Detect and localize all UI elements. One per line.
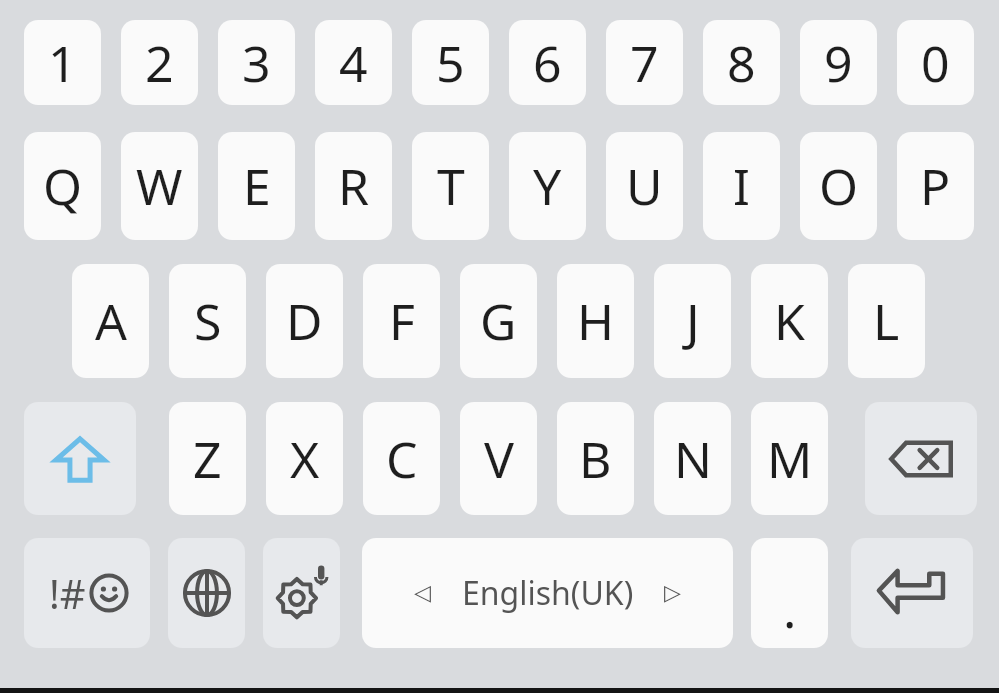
button[interactable]: M [751, 402, 828, 515]
button[interactable]: P [897, 132, 974, 240]
staticText: 6 [533, 29, 562, 97]
button[interactable]: Q [24, 132, 101, 240]
staticText: L [873, 287, 900, 355]
staticText: J [686, 287, 700, 355]
staticText: 9 [824, 29, 853, 97]
staticText: D [286, 287, 323, 355]
button[interactable]: 9 [800, 20, 877, 105]
staticText: 0 [921, 29, 950, 97]
staticText: U [626, 152, 663, 220]
staticText: X [290, 425, 320, 493]
button[interactable]: 1 [24, 20, 101, 105]
button[interactable]: F [363, 264, 440, 378]
staticText: !# [49, 566, 86, 620]
staticText: N [674, 425, 712, 493]
staticText: 4 [339, 29, 368, 97]
staticText: 8 [727, 29, 756, 97]
button[interactable]: 4 [315, 20, 392, 105]
staticText: S [194, 287, 222, 355]
staticText: W [136, 152, 183, 220]
button[interactable]: Backspace [865, 402, 977, 515]
staticText: A [95, 287, 127, 355]
button[interactable]: S [169, 264, 246, 378]
staticText: F [389, 287, 415, 355]
staticText: 2 [145, 29, 174, 97]
button[interactable]: J [654, 264, 731, 378]
button[interactable]: Y [509, 132, 586, 240]
staticText: 3 [242, 29, 271, 97]
staticText: T [437, 152, 465, 220]
staticText: R [338, 152, 370, 220]
staticText: V [484, 425, 514, 493]
button[interactable]: 7 [606, 20, 683, 105]
button[interactable]: D [266, 264, 343, 378]
button[interactable]: C [363, 402, 440, 515]
staticText: Q [43, 152, 83, 220]
staticText: English(UK) [462, 571, 634, 615]
button[interactable]: E [218, 132, 295, 240]
staticText: . [783, 575, 797, 643]
staticText: G [480, 287, 517, 355]
button[interactable]: ◁ [362, 538, 733, 648]
staticText: H [577, 287, 615, 355]
staticText: Y [533, 152, 562, 220]
button[interactable]: L [848, 264, 925, 378]
button[interactable]: . [751, 538, 828, 648]
button[interactable]: V [460, 402, 537, 515]
button[interactable]: O [800, 132, 877, 240]
button[interactable]: K [751, 264, 828, 378]
button[interactable]: N [654, 402, 731, 515]
staticText: Z [193, 425, 222, 493]
staticText: ▷ [664, 580, 681, 606]
button[interactable]: H [557, 264, 634, 378]
staticText: ◁ [414, 580, 431, 606]
button[interactable]: Z [169, 402, 246, 515]
staticText: B [579, 425, 612, 493]
button[interactable]: Change language [168, 538, 245, 648]
button[interactable]: Enter [851, 538, 973, 648]
staticText: 7 [630, 29, 659, 97]
staticText: 5 [436, 29, 465, 97]
button[interactable]: U [606, 132, 683, 240]
button[interactable]: W [121, 132, 198, 240]
button[interactable]: T [412, 132, 489, 240]
button[interactable]: Symbols [24, 538, 150, 648]
button[interactable]: 8 [703, 20, 780, 105]
button[interactable]: I [703, 132, 780, 240]
button[interactable]: X [266, 402, 343, 515]
staticText: I [733, 152, 750, 220]
button[interactable]: B [557, 402, 634, 515]
button[interactable]: 0 [897, 20, 974, 105]
button[interactable]: 2 [121, 20, 198, 105]
staticText: O [819, 152, 859, 220]
staticText: 1 [48, 29, 77, 97]
button[interactable]: A [72, 264, 149, 378]
staticText: M [767, 425, 813, 493]
button[interactable]: Shift [24, 402, 136, 515]
staticText: K [774, 287, 805, 355]
staticText: P [920, 152, 951, 220]
button[interactable]: 3 [218, 20, 295, 105]
button[interactable]: G [460, 264, 537, 378]
button[interactable]: 6 [509, 20, 586, 105]
button[interactable]: Settings [263, 538, 340, 648]
staticText: C [386, 425, 418, 493]
staticText: E [243, 152, 271, 220]
button[interactable]: R [315, 132, 392, 240]
button[interactable]: 5 [412, 20, 489, 105]
